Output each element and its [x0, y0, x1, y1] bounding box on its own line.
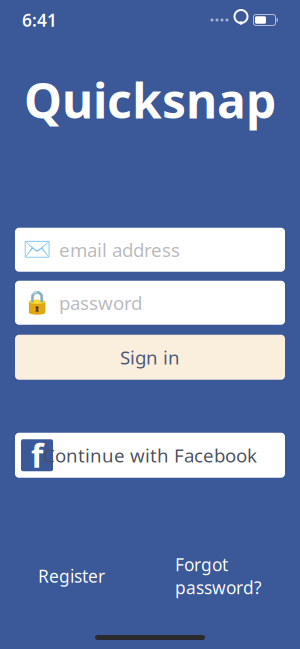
button[interactable]: ✉️: [15, 228, 285, 272]
staticText: Register: [38, 564, 105, 587]
button[interactable]: f: [15, 433, 285, 478]
staticText: 6:41: [22, 8, 57, 31]
button[interactable]: Sign in: [15, 335, 285, 380]
staticText: ✉️: [23, 237, 51, 263]
staticText: Sign in: [120, 345, 180, 370]
staticText: 🔒: [23, 290, 51, 316]
button[interactable]: Register: [32, 556, 111, 595]
staticText: Quicksnap: [24, 68, 276, 132]
staticText: email address: [59, 237, 180, 262]
staticText: Continue with Facebook: [43, 443, 257, 468]
staticText: password: [59, 290, 142, 315]
staticText: Forgot password?: [175, 553, 262, 599]
staticText: f: [31, 434, 43, 476]
button[interactable]: 🔒: [15, 281, 285, 325]
button[interactable]: Forgot password?: [169, 545, 268, 607]
